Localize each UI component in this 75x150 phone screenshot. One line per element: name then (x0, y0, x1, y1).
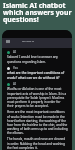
staticText: You (13, 66, 18, 70)
staticText: Wudhu or Ablution is one of the most imp… (7, 87, 68, 107)
staticText: AI (13, 82, 16, 86)
staticText: Here are the most important conditions o… (7, 110, 68, 134)
staticText: AI (13, 50, 16, 54)
staticText: what are the important conditions of wud… (7, 71, 65, 79)
staticText: ISLAMIC AI (22, 40, 35, 43)
staticText: Islamic AI chatbot which answers your qu… (3, 1, 75, 24)
staticText: Salaam! I would love to answer any quest… (7, 55, 58, 63)
staticText: The hands, mouth and nose are cleaned in… (7, 137, 68, 149)
